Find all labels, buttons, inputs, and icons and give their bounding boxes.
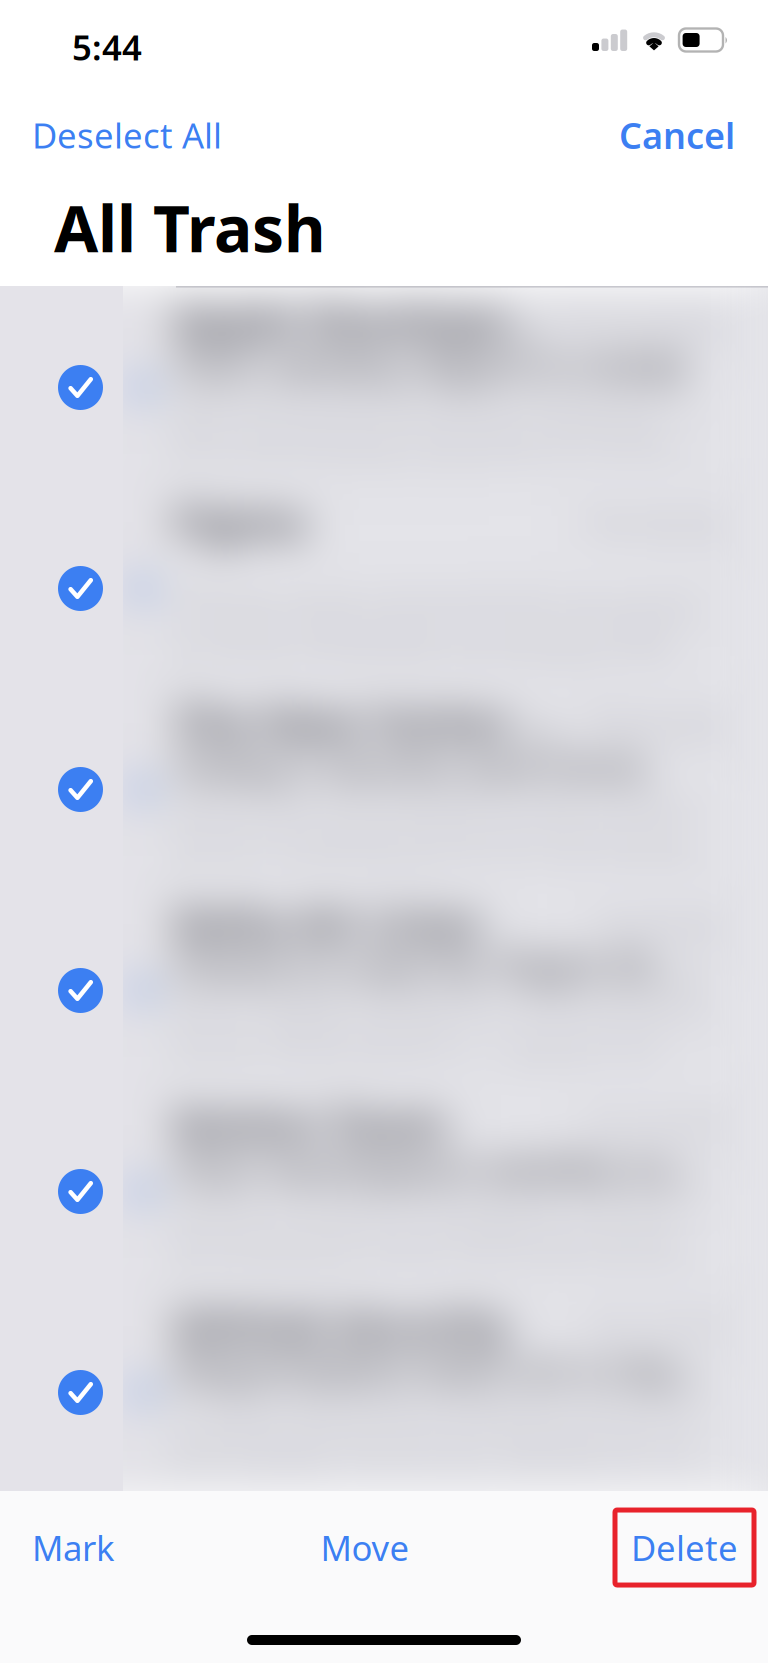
staticText: Move	[320, 1524, 409, 1570]
button[interactable]: Selected	[58, 1370, 103, 1415]
button[interactable]: Cancel	[619, 96, 735, 174]
button[interactable]: Move	[320, 1504, 409, 1590]
button[interactable]: Deselect All	[32, 97, 222, 173]
staticText: Plus the crossword, the cartoon	[173, 781, 722, 831]
staticText: Mark	[32, 1524, 115, 1570]
staticText: Delta Air Lines	[173, 894, 482, 952]
staticText: See everything that shipped across	[173, 379, 722, 429]
staticText: Figma	[173, 492, 305, 550]
button[interactable]: Selected	[58, 767, 103, 812]
staticText: Dependabot alert on a repository	[173, 1341, 722, 1394]
button[interactable]: Selected	[58, 365, 103, 410]
staticText: Your weekly digest is ready	[173, 336, 688, 389]
staticText: All Trash	[54, 185, 326, 270]
staticText: Delete	[631, 1524, 738, 1570]
staticText: Sunday	[603, 900, 722, 946]
staticText: GitHub Security	[173, 1296, 508, 1354]
staticText: Cancel	[619, 111, 735, 159]
staticText: Here is what changed in your	[173, 1183, 687, 1233]
button[interactable]: Selected	[58, 566, 103, 611]
staticText: Deselect All	[32, 112, 222, 158]
staticText: Check in now for flight DL 238 today	[173, 939, 722, 992]
staticText: Yesterday	[562, 297, 722, 343]
button[interactable]: Delete	[615, 1510, 754, 1585]
staticText: Your workspace weekly summary report	[173, 1140, 722, 1193]
button[interactable]: Selected	[58, 1169, 103, 1214]
button[interactable]: Selected	[58, 968, 103, 1013]
staticText: The New Yorker Daily	[173, 693, 583, 751]
button[interactable]: Mark	[32, 1504, 115, 1590]
staticText: Notion Team	[173, 1095, 447, 1153]
staticText: Apple Developer News	[173, 291, 554, 349]
staticText: A new advisory affects one of the	[173, 1384, 722, 1434]
staticText: 5:44	[72, 24, 142, 70]
staticText: Today's stories and more	[173, 738, 647, 791]
staticText: Your flight departs in 24 hours	[173, 982, 705, 1032]
staticText	[173, 537, 183, 590]
